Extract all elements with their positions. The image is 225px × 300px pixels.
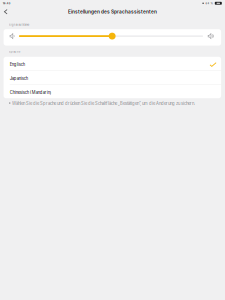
- staticText: 19:43: [3, 2, 11, 5]
- staticText: Chinesisch (Mandarin): [10, 90, 52, 95]
- staticText: Englisch: [10, 62, 25, 67]
- staticText: Einstellungen des Sprachassistenten: [68, 9, 157, 15]
- staticText: Sprache: [9, 50, 21, 53]
- staticText: Japanisch: [10, 76, 28, 81]
- button[interactable]: Japanisch: [4, 71, 221, 85]
- staticText: Signallautstärke: [9, 23, 30, 26]
- button[interactable]: Chinesisch (Mandarin): [4, 85, 221, 98]
- staticText: Wählen Sie die Sprache und drücken Sie d…: [12, 101, 195, 106]
- staticText: 64 %: [205, 2, 212, 5]
- button[interactable]: Zurück: [1, 7, 10, 16]
- button[interactable]: Englisch: [4, 57, 221, 71]
